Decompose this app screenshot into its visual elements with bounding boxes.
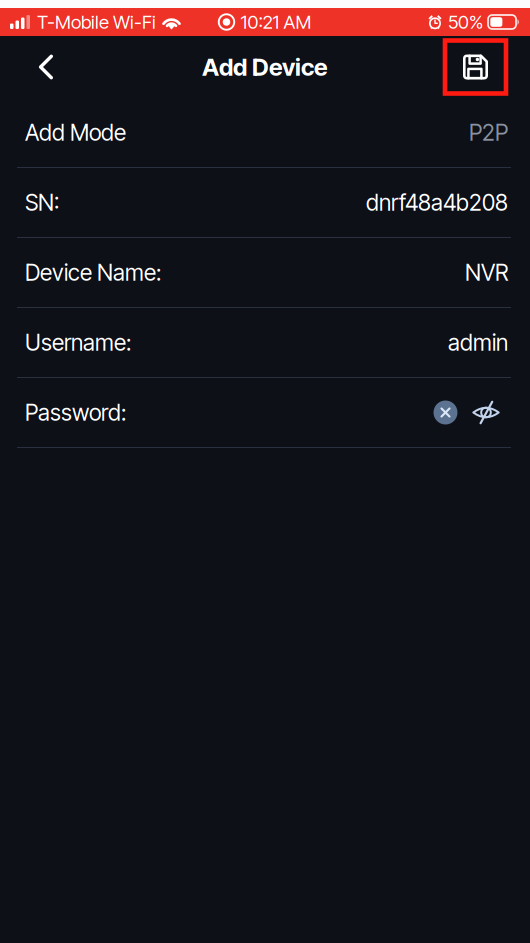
staticText: P2P (469, 119, 508, 146)
button[interactable]: Add Mode (0, 98, 530, 167)
staticText: Password: (25, 399, 126, 426)
staticText: 50% (448, 11, 483, 33)
button[interactable]: Show password (465, 386, 507, 438)
button[interactable]: Back (17, 36, 75, 97)
button[interactable]: Username: (0, 308, 530, 377)
staticText: T-Mobile Wi-Fi (37, 11, 156, 33)
staticText: Device Name: (25, 259, 161, 286)
button[interactable]: SN: (0, 168, 530, 237)
staticText: dnrf48a4b208 (366, 189, 508, 216)
staticText: 10:21 AM (240, 11, 311, 33)
button[interactable]: Clear password (426, 386, 465, 438)
staticText: Add Device (202, 53, 328, 81)
staticText: admin (448, 329, 508, 356)
button[interactable]: Save (445, 36, 506, 97)
staticText: NVR (465, 259, 508, 286)
button[interactable]: Device Name: (0, 238, 530, 307)
staticText: SN: (25, 189, 59, 216)
staticText: Username: (25, 329, 131, 356)
staticText: Add Mode (25, 119, 126, 146)
